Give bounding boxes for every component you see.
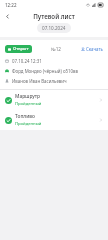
staticText: Скачать [86,46,103,52]
staticText: 12:22 [5,2,17,8]
staticText: Топливо [15,113,35,120]
staticText: Пройденный [15,101,42,107]
staticText: 07.10.2024 [42,25,66,31]
button[interactable]: Открыт [5,45,32,53]
button[interactable]: 07.10.2024 [37,23,71,33]
staticText: 07.10.24 12:31 [12,58,42,64]
button[interactable]: Скачать [81,46,103,52]
staticText: Форд Мондео (чёрный) о510вв [12,68,79,74]
staticText: Маршрутр [15,93,41,100]
staticText: Открыт [13,46,29,52]
staticText: Путевой лист [33,12,75,20]
staticText: Иванов Иван Васильевич [12,78,67,84]
button[interactable]: Маршрутр [0,90,108,110]
staticText: №12 [51,46,61,52]
staticText: Пройденный [15,121,42,127]
button[interactable]: Назад [0,9,14,23]
button[interactable]: Топливо [0,110,108,130]
